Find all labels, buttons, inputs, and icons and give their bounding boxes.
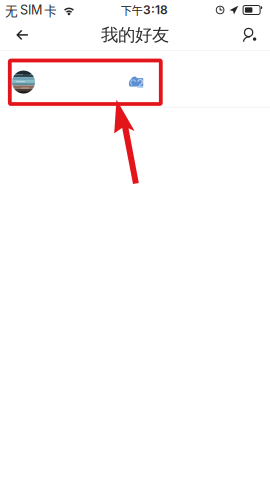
button[interactable]: 2 bbox=[0, 51, 270, 107]
staticText: 我的好友 bbox=[101, 24, 169, 46]
staticText: 下午 bbox=[120, 2, 142, 18]
button[interactable]: 返回 bbox=[6, 21, 38, 49]
staticText: 3:18 bbox=[143, 3, 168, 17]
button[interactable]: 添加好友 bbox=[234, 21, 266, 49]
staticText: 卡 bbox=[44, 1, 57, 19]
staticText: SIM bbox=[20, 2, 42, 18]
staticText: 无 bbox=[5, 1, 18, 19]
staticText: 2 bbox=[136, 76, 143, 91]
